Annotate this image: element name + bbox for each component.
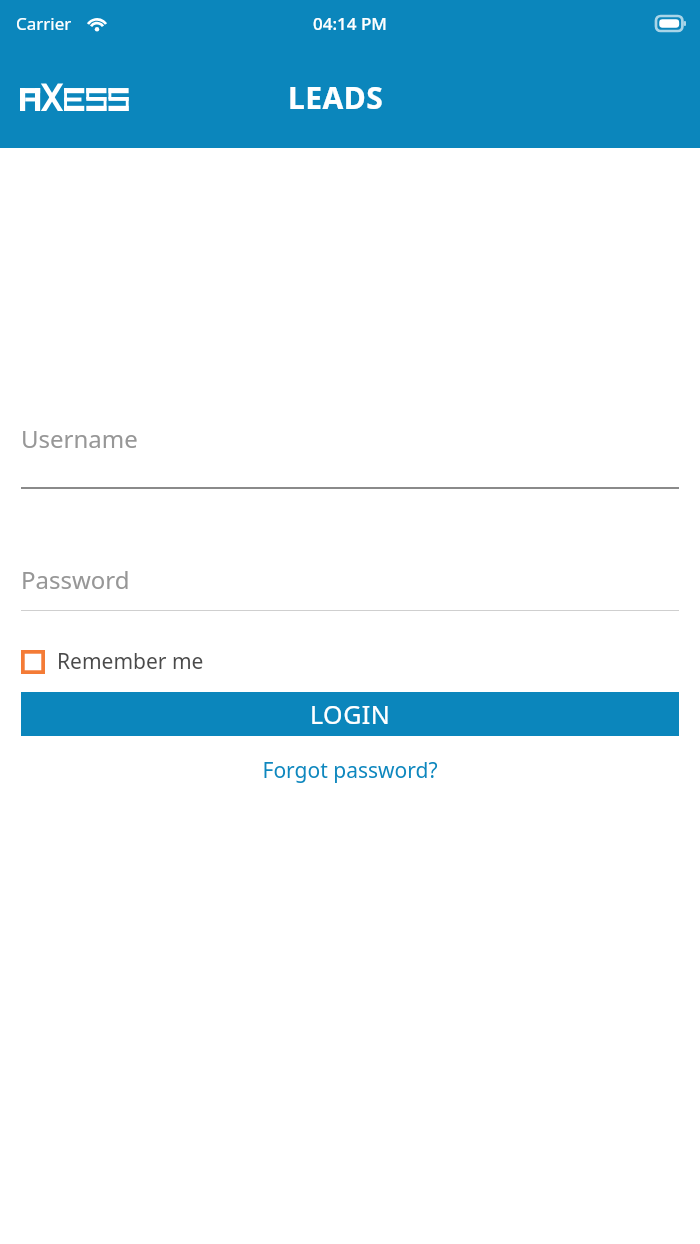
staticText: Remember me [57,647,204,676]
staticText: Password [21,563,130,596]
staticText: LOGIN [310,697,391,731]
staticText: 04:14 PM [313,12,387,35]
button[interactable]: LOGIN [21,692,679,736]
button[interactable]: Forgot password? [254,752,446,789]
staticText: Carrier [16,12,72,35]
other: Axess logo [20,83,184,111]
button[interactable]: Username [21,422,679,489]
button[interactable]: Password [21,563,679,611]
staticText: LEADS [288,77,384,118]
staticText: Username [21,422,138,455]
button[interactable]: Remember me [21,647,204,676]
